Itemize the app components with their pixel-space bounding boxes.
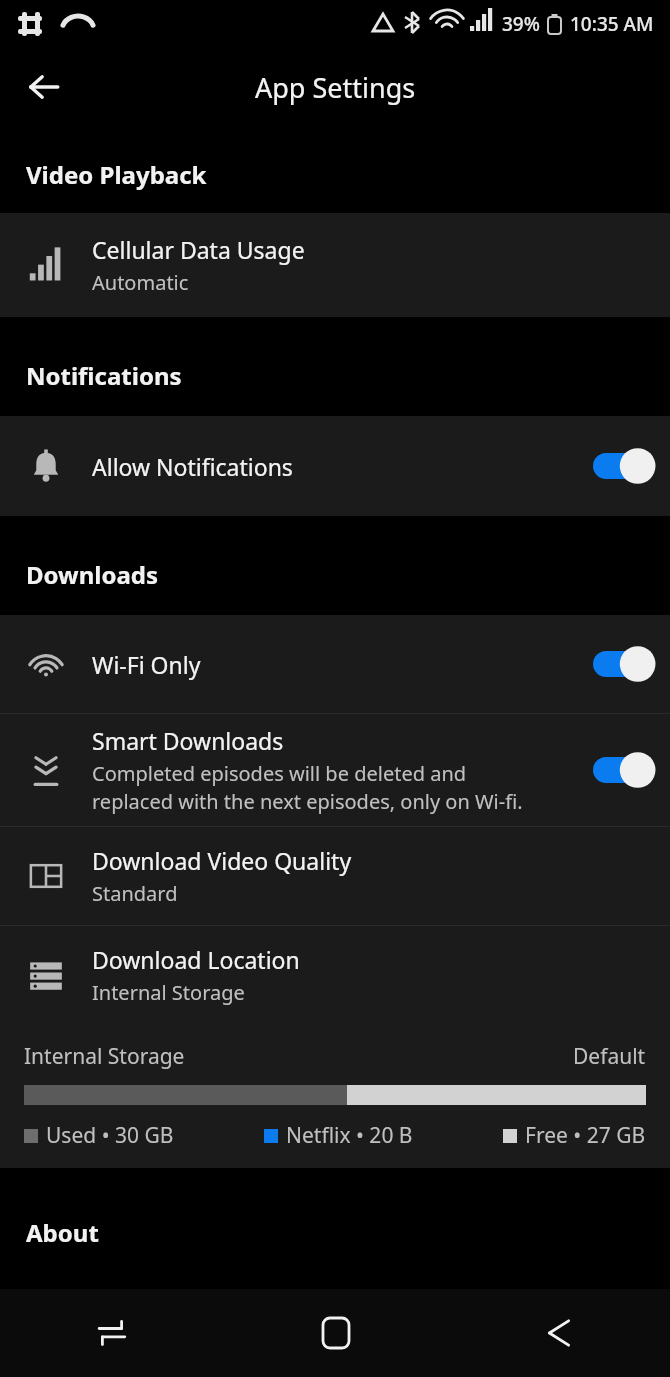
staticText: App Settings	[255, 69, 416, 106]
button[interactable]: Smart Downloads	[0, 714, 670, 826]
button[interactable]: Allow Notifications	[0, 416, 670, 516]
staticText: Used • 30 GB	[46, 1121, 174, 1150]
button[interactable]: Cellular Data Usage	[0, 213, 670, 317]
button[interactable]: Download Video Quality	[0, 827, 670, 925]
staticText: 39%	[502, 11, 540, 37]
staticText: Video Playback	[26, 158, 207, 191]
staticText: Notifications	[26, 359, 182, 392]
staticText: Download Video Quality	[92, 845, 352, 876]
button[interactable]	[578, 739, 670, 801]
button[interactable]	[578, 633, 670, 695]
staticText: Free • 27 GB	[525, 1121, 646, 1150]
button[interactable]: Download Location	[0, 926, 670, 1024]
staticText: Standard	[92, 880, 178, 907]
staticText: Completed episodes will be deleted and r…	[92, 760, 523, 815]
button[interactable]: Recent apps	[0, 1289, 224, 1377]
button[interactable]: Home	[224, 1289, 447, 1377]
staticText: Internal Storage	[24, 1042, 185, 1071]
button[interactable]	[578, 435, 670, 497]
staticText: Allow Notifications	[92, 451, 293, 482]
staticText: Download Location	[92, 944, 300, 975]
staticText: Automatic	[92, 269, 189, 296]
button[interactable]: Back	[12, 55, 76, 119]
staticText: Wi-Fi Only	[92, 649, 201, 680]
button[interactable]: Back	[447, 1289, 670, 1377]
staticText: Cellular Data Usage	[92, 234, 305, 265]
staticText: Downloads	[26, 558, 158, 591]
staticText: Netflix • 20 B	[286, 1121, 413, 1150]
staticText: About	[26, 1216, 99, 1249]
staticText: Internal Storage	[92, 979, 245, 1006]
button[interactable]: Wi-Fi Only	[0, 615, 670, 713]
staticText: Default	[573, 1042, 646, 1071]
staticText: 10:35 AM	[570, 11, 654, 37]
staticText: Smart Downloads	[92, 725, 284, 756]
